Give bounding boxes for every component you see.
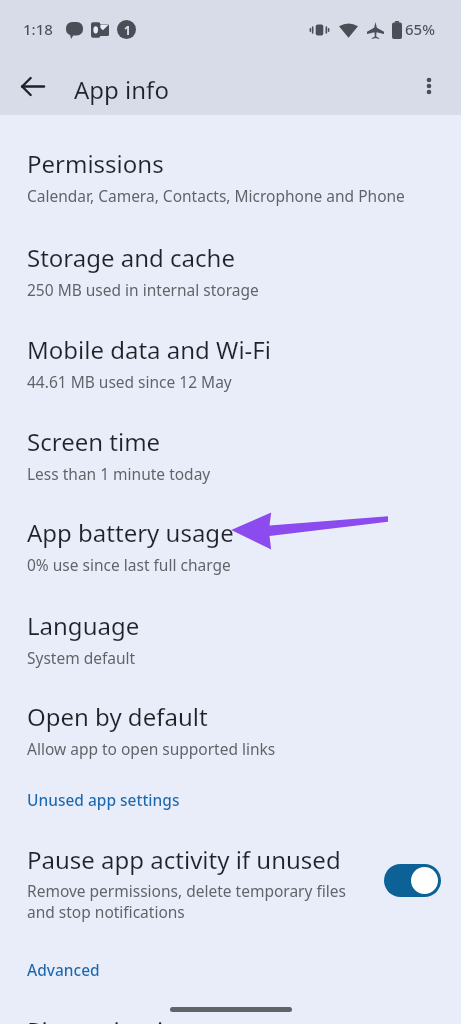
staticText: 250 MB used in internal storage [27, 279, 259, 300]
staticText: 1:18 [23, 19, 53, 39]
button[interactable]: Screen time [0, 423, 461, 515]
button[interactable]: Language [0, 607, 461, 699]
button[interactable]: Pause app activity if unused [0, 833, 461, 938]
staticText: Language [27, 609, 140, 642]
staticText: 44.61 MB used since 12 May [27, 371, 232, 392]
staticText: App battery usage [27, 516, 234, 549]
staticText: Pause app activity if unused [27, 843, 341, 876]
staticText: Allow app to open supported links [27, 738, 276, 759]
staticText: Open by default [27, 700, 208, 733]
staticText: System default [27, 647, 136, 668]
button[interactable]: Permissions [0, 145, 461, 237]
button[interactable]: Mobile data and Wi-Fi [0, 331, 461, 423]
button[interactable]: Pause app activity if unused toggle [384, 864, 441, 897]
staticText: Unused app settings [27, 789, 180, 810]
staticText: Picture-in-picture [27, 1014, 222, 1024]
staticText: Screen time [27, 425, 161, 458]
staticText: Permissions [27, 147, 164, 180]
button[interactable]: More options [405, 62, 453, 110]
button[interactable]: Unused app settings [27, 789, 180, 810]
button[interactable]: Storage and cache [0, 239, 461, 331]
staticText: 1 [124, 22, 131, 38]
button[interactable]: Picture-in-picture [0, 1008, 461, 1024]
staticText: Storage and cache [27, 241, 235, 274]
button[interactable]: Advanced [27, 959, 100, 980]
staticText: 65% [405, 19, 435, 39]
staticText: Calendar, Camera, Contacts, Microphone a… [27, 185, 405, 206]
staticText: 0% use since last full charge [27, 554, 231, 575]
staticText: Remove permissions, delete temporary fil… [27, 880, 357, 923]
button[interactable]: App battery usage [0, 514, 461, 606]
button[interactable]: Back [8, 62, 56, 110]
staticText: App info [74, 73, 169, 106]
staticText: Advanced [27, 959, 100, 980]
staticText: Less than 1 minute today [27, 463, 211, 484]
staticText: Mobile data and Wi-Fi [27, 333, 271, 366]
button[interactable]: Open by default [0, 698, 461, 790]
